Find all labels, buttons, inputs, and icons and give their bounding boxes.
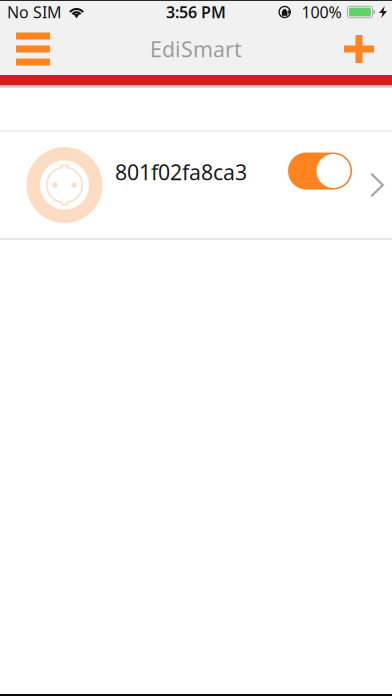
- button[interactable]: Add device: [326, 23, 392, 75]
- staticText: 3:56 PM: [166, 1, 226, 23]
- button[interactable]: 801f02fa8ca3: [0, 132, 392, 238]
- staticText: 801f02fa8ca3: [115, 158, 247, 186]
- button[interactable]: Menu: [0, 23, 66, 75]
- staticText: EdiSmart: [150, 35, 242, 63]
- staticText: 100%: [301, 1, 341, 23]
- staticText: No SIM: [7, 1, 62, 23]
